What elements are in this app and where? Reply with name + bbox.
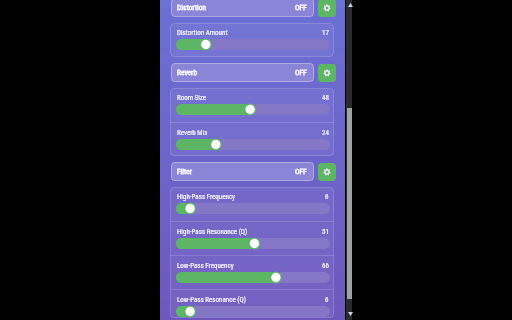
button[interactable]: High-Pass Resonance (Q) <box>170 222 334 255</box>
button[interactable]: Low-Pass Resonance (Q) <box>170 290 334 318</box>
staticText: OFF <box>295 167 307 176</box>
button[interactable]: Reverb Mix <box>170 123 334 156</box>
staticText: 6 <box>325 193 329 201</box>
staticText: Room Size <box>177 94 207 102</box>
button[interactable]: Distortion <box>171 0 314 17</box>
staticText: OFF <box>295 68 307 77</box>
button[interactable]: Low-Pass Frequency <box>170 256 334 289</box>
other: Scroll bar <box>346 0 352 320</box>
button[interactable]: Distortion Amount <box>170 23 334 57</box>
staticText: Low-Pass Frequency <box>177 262 234 270</box>
button[interactable]: Room Size <box>170 88 334 122</box>
staticText: OFF <box>295 3 307 12</box>
staticText: High-Pass Frequency <box>177 193 236 201</box>
button[interactable]: Filter <box>171 162 314 181</box>
staticText: Filter <box>177 167 193 176</box>
staticText: 51 <box>322 228 329 236</box>
staticText: 66 <box>322 262 329 270</box>
staticText: Reverb <box>177 68 198 77</box>
staticText: 17 <box>322 29 329 37</box>
button[interactable]: High-Pass Frequency <box>170 187 334 221</box>
staticText: Reverb Mix <box>177 129 208 137</box>
button[interactable]: Reverb <box>171 63 314 82</box>
staticText: 6 <box>325 296 329 304</box>
button[interactable]: Effect settings <box>318 0 336 17</box>
staticText: Distortion Amount <box>177 29 228 37</box>
staticText: 48 <box>322 94 329 102</box>
staticText: High-Pass Resonance (Q) <box>177 228 248 236</box>
button[interactable]: Effect settings <box>318 163 336 181</box>
staticText: 24 <box>322 129 329 137</box>
staticText: Low-Pass Resonance (Q) <box>177 296 246 304</box>
staticText: Distortion <box>177 3 207 12</box>
button[interactable]: Effect settings <box>318 64 336 82</box>
